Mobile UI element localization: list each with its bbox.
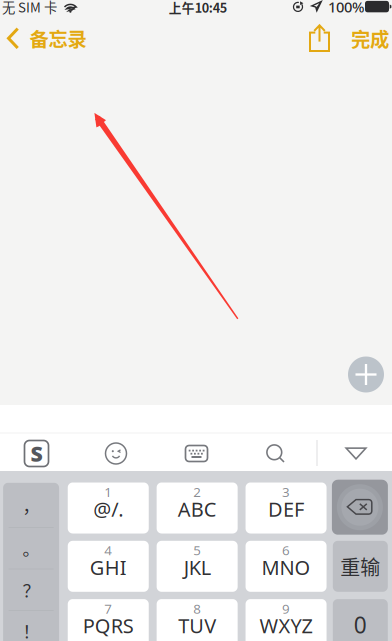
staticText: JKL <box>184 554 211 581</box>
staticText: S <box>30 439 42 468</box>
button[interactable]: Keyboard layout <box>166 434 226 472</box>
staticText: WXYZ <box>260 612 313 639</box>
button[interactable]: Add attachment <box>348 356 384 392</box>
staticText: 6 <box>282 541 290 559</box>
staticText: ABC <box>178 496 217 522</box>
staticText: 完成 <box>351 24 389 52</box>
button[interactable]: 4 <box>68 541 149 592</box>
button[interactable]: Delete <box>332 480 388 535</box>
button[interactable]: 1 <box>68 482 149 533</box>
staticText: 3 <box>282 483 290 501</box>
button[interactable]: ？ <box>3 569 59 610</box>
button[interactable]: 7 <box>68 599 149 641</box>
staticText: 1 <box>104 483 112 501</box>
button[interactable]: 9 <box>246 599 327 641</box>
button[interactable]: Emoji <box>86 434 146 472</box>
staticText: 上午10:45 <box>169 0 227 16</box>
staticText: 重输 <box>340 552 380 581</box>
button[interactable]: Hide keyboard <box>326 434 386 472</box>
staticText: 。 <box>23 536 40 561</box>
staticText: GHI <box>90 554 127 581</box>
staticText: 5 <box>193 541 201 559</box>
button[interactable]: 2 <box>157 482 238 533</box>
button[interactable]: 6 <box>246 541 327 592</box>
button[interactable]: 重输 <box>333 541 388 592</box>
staticText: DEF <box>268 496 304 522</box>
staticText: 100% <box>328 0 364 17</box>
button[interactable]: Sogou input <box>6 434 66 472</box>
button[interactable]: 备忘录 <box>0 18 93 58</box>
button[interactable]: Share <box>298 18 340 58</box>
button[interactable]: ， <box>3 483 59 528</box>
staticText: 备忘录 <box>29 24 86 52</box>
staticText: 9 <box>282 600 290 617</box>
button[interactable]: 0 <box>333 599 388 641</box>
button[interactable]: ！ <box>3 611 59 641</box>
button[interactable]: 5 <box>157 541 238 592</box>
staticText: ！ <box>23 618 40 641</box>
staticText: ？ <box>23 577 40 602</box>
staticText: 8 <box>193 600 201 617</box>
button[interactable]: 完成 <box>343 18 392 58</box>
button[interactable]: 8 <box>157 599 238 641</box>
staticText: 0 <box>354 609 367 640</box>
staticText: TUV <box>178 612 216 639</box>
staticText: 7 <box>104 600 112 617</box>
button[interactable]: 。 <box>3 528 59 569</box>
staticText: @/. <box>93 496 123 522</box>
staticText: 无 SIM 卡 <box>2 0 57 16</box>
staticText: 4 <box>104 541 112 559</box>
button[interactable]: Search <box>245 434 305 472</box>
staticText: PQRS <box>83 612 134 639</box>
staticText: 2 <box>193 483 201 501</box>
staticText: MNO <box>262 554 311 581</box>
staticText: ， <box>23 493 40 518</box>
button[interactable]: 3 <box>246 482 327 533</box>
